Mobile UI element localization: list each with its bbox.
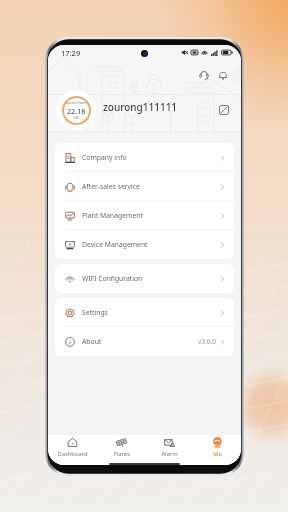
button[interactable]: Customer support <box>196 67 212 83</box>
button[interactable]: Device Management <box>55 230 234 259</box>
button[interactable]: After-sales service <box>55 172 234 201</box>
staticText: Device Management <box>82 240 148 249</box>
staticText: WIFI Configuration <box>82 274 143 283</box>
button[interactable]: WIFI Configuration <box>55 264 234 293</box>
staticText: 22.18 <box>67 106 86 116</box>
button[interactable]: Edit profile <box>216 102 232 118</box>
button[interactable]: Settings <box>55 298 234 327</box>
staticText: Alarm <box>161 450 178 458</box>
button[interactable]: Plants <box>97 435 145 460</box>
button[interactable]: About <box>55 327 234 356</box>
staticText: Plants <box>113 450 130 458</box>
staticText: Dashboard <box>57 450 88 458</box>
staticText: About <box>82 337 102 346</box>
staticText: Settings <box>82 308 108 317</box>
button[interactable]: Alarm <box>145 435 193 460</box>
staticText: Plant Management <box>82 211 143 220</box>
staticText: Me <box>213 450 222 458</box>
staticText: Company info <box>82 153 127 162</box>
button[interactable]: Me <box>193 435 241 460</box>
button[interactable]: Dashboard <box>48 435 97 460</box>
staticText: Current Power <box>65 101 87 105</box>
staticText: After-sales service <box>82 182 140 191</box>
button[interactable]: Company info <box>55 143 234 172</box>
button[interactable]: Plant Management <box>55 201 234 230</box>
staticText: 17:29 <box>61 48 81 58</box>
staticText: v3.0.0 <box>198 337 216 346</box>
button[interactable]: Notifications <box>215 67 231 83</box>
staticText: kW <box>74 116 79 120</box>
staticText: zourong111111 <box>103 100 178 114</box>
